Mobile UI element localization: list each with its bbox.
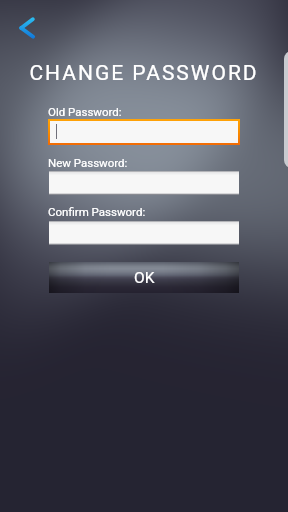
staticText: Confirm Password: bbox=[48, 205, 146, 218]
button[interactable]: Back bbox=[9, 8, 45, 44]
button[interactable]: OK bbox=[49, 262, 239, 293]
button[interactable] bbox=[50, 121, 238, 143]
staticText: New Password: bbox=[48, 156, 128, 169]
staticText: Old Password: bbox=[48, 105, 122, 118]
button[interactable] bbox=[49, 221, 239, 245]
staticText: CHANGE PASSWORD bbox=[0, 61, 288, 86]
staticText: OK bbox=[134, 269, 155, 287]
button[interactable] bbox=[49, 171, 239, 195]
